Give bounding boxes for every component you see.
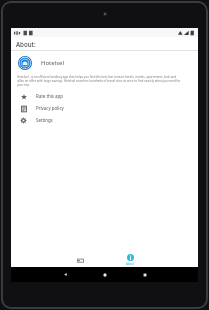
staticText: Privacy policy (36, 105, 64, 111)
button[interactable]: Privacy policy (11, 102, 198, 114)
staticText: villas on offer with huge savings. Hotel… (17, 79, 181, 83)
staticText: Hotelsel - is an efficient booking app t… (17, 75, 177, 79)
button[interactable]: Rate this app (11, 90, 198, 102)
button[interactable]: Back (45, 267, 85, 282)
button[interactable]: Settings (11, 114, 198, 126)
staticText: About (126, 262, 134, 266)
button[interactable]: Hotelsel (11, 51, 198, 75)
button[interactable]: About (113, 253, 147, 267)
staticText: your trip. (17, 83, 30, 87)
staticText: Hotelsel (41, 59, 64, 67)
staticText: Settings (36, 117, 53, 123)
button[interactable]: Hotels (63, 253, 97, 267)
staticText: Rate this app (36, 93, 63, 99)
button[interactable]: Home (85, 267, 125, 282)
button[interactable]: Recent apps (125, 267, 165, 282)
staticText: About: (16, 40, 36, 48)
